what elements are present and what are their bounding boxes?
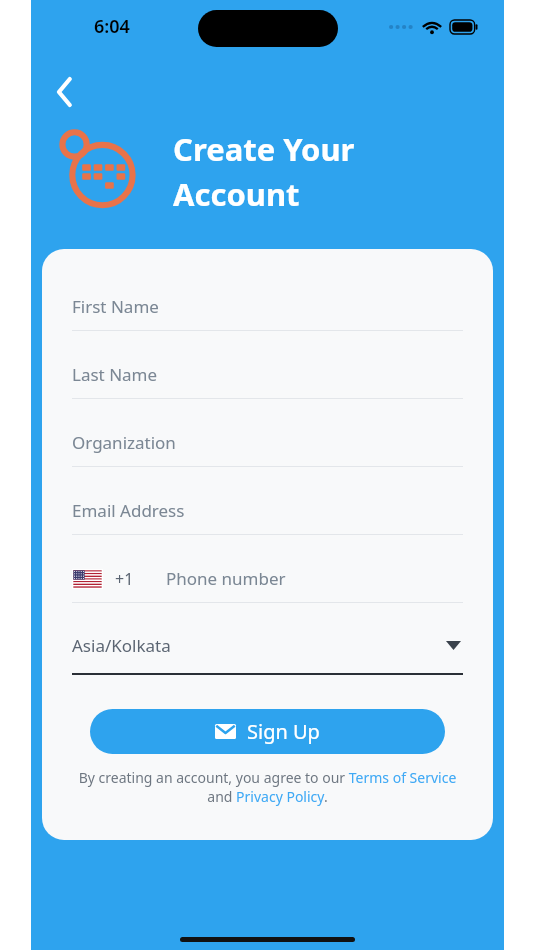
button[interactable]: Email Address [72, 487, 463, 555]
button[interactable]: Last Name [72, 351, 463, 419]
staticText: Organization [72, 431, 176, 454]
button[interactable]: Sign Up [90, 709, 445, 754]
button[interactable]: +1 [72, 555, 463, 603]
button[interactable]: Organization [72, 419, 463, 487]
button[interactable]: By creating an account, you agree to our… [72, 768, 463, 806]
staticText: Asia/Kolkata [72, 634, 171, 657]
staticText: 6:04 [94, 14, 130, 39]
button[interactable]: Back [43, 70, 87, 114]
staticText: Sign Up [247, 718, 320, 745]
button[interactable]: First Name [72, 283, 463, 351]
staticText: First Name [72, 295, 159, 318]
staticText: By creating an account, you agree to our… [72, 768, 463, 806]
staticText: Email Address [72, 499, 185, 522]
button[interactable]: Asia/Kolkata [72, 625, 463, 675]
staticText: +1 [115, 568, 134, 590]
staticText: Phone number [166, 567, 286, 590]
staticText: Create Your Account [173, 128, 355, 215]
staticText: Last Name [72, 363, 158, 386]
